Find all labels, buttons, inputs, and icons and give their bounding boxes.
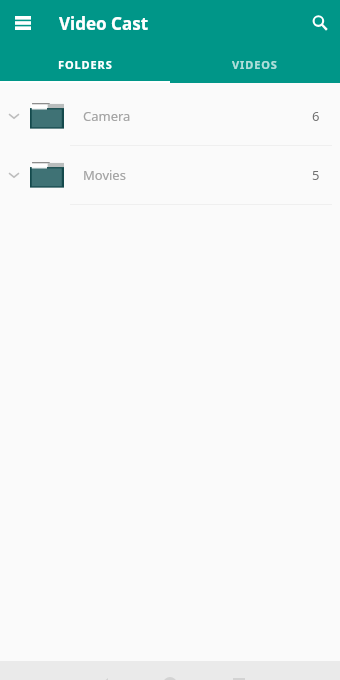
staticText: Movies xyxy=(83,166,126,184)
staticText: 6 xyxy=(312,107,320,125)
button[interactable]: Movies xyxy=(0,146,340,204)
button[interactable]: VIDEOS xyxy=(170,46,340,83)
staticText: Video Cast xyxy=(59,12,149,35)
staticText: VIDEOS xyxy=(232,57,278,72)
staticText: FOLDERS xyxy=(58,57,113,72)
button[interactable]: FOLDERS xyxy=(0,46,170,83)
button[interactable]: Search xyxy=(294,0,340,46)
button[interactable]: Menu xyxy=(0,0,46,46)
staticText: 5 xyxy=(312,166,320,184)
button[interactable]: Camera xyxy=(0,87,340,145)
staticText: Camera xyxy=(83,107,131,125)
